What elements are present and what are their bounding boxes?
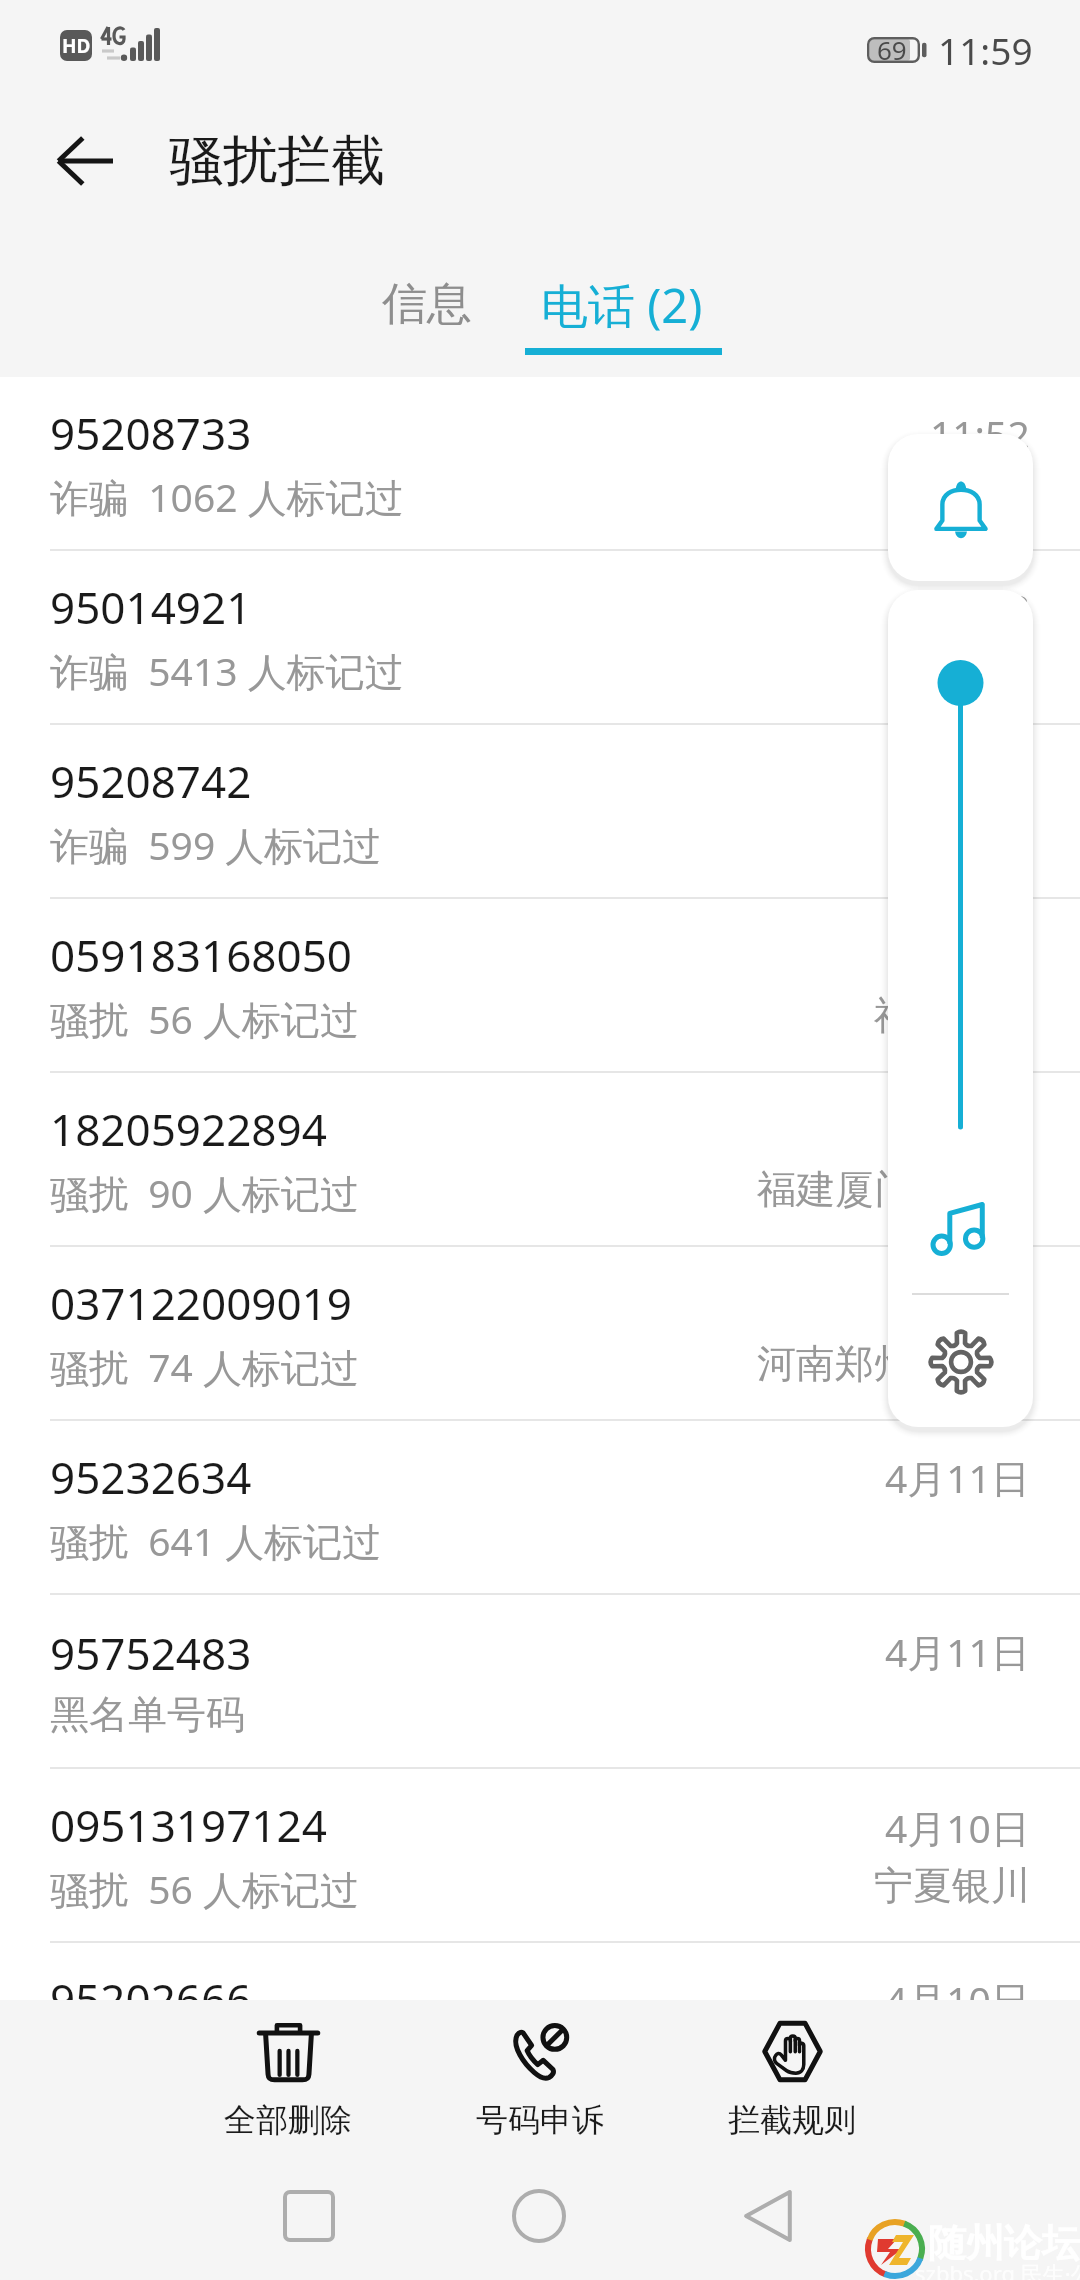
staticText: 11:48 xyxy=(930,581,1030,634)
button[interactable]: 电话 (2) xyxy=(525,260,722,377)
button[interactable]: Back xyxy=(14,100,154,222)
staticText: 037122009019 xyxy=(50,1273,353,1333)
staticText: 11:59 xyxy=(938,25,1033,75)
button[interactable]: 全部删除 xyxy=(162,2000,414,2151)
button[interactable]: 18205922894 xyxy=(0,1073,1080,1247)
button[interactable]: 95202666 xyxy=(0,1943,1080,2117)
button[interactable]: 95208742 xyxy=(0,725,1080,899)
staticText: 诈骗 5413 人标记过 xyxy=(50,644,404,697)
staticText: 95208742 xyxy=(50,751,252,811)
button[interactable]: Ringer mode xyxy=(888,434,1033,581)
staticText: HD xyxy=(62,33,91,59)
staticText: 059183168050 xyxy=(50,925,353,985)
button[interactable]: 95232634 xyxy=(0,1421,1080,1595)
staticText: 18205922894 xyxy=(50,1099,327,1159)
staticText: 号码申诉 xyxy=(476,2100,604,2140)
staticText: 骚扰 38 人标记过 xyxy=(50,2036,360,2089)
staticText: 11:52 xyxy=(930,407,1030,460)
staticText: 河南郑州市联通 xyxy=(757,1339,1030,1388)
staticText: 09513197124 xyxy=(50,1795,327,1855)
staticText: 95202666 xyxy=(50,1969,252,2029)
staticText: 95208733 xyxy=(50,403,252,463)
staticText: 95232634 xyxy=(50,1447,252,1507)
button[interactable]: Sound settings xyxy=(913,1314,1009,1410)
button[interactable]: 信息 xyxy=(328,260,525,377)
button[interactable]: 95752483 xyxy=(0,1595,1080,1769)
staticText: 诈骗 1062 人标记过 xyxy=(50,470,404,523)
button[interactable]: 95014921 xyxy=(0,551,1080,725)
staticText: 宁夏银川 xyxy=(874,1861,1030,1910)
staticText: 骚扰 56 人标记过 xyxy=(50,992,360,1045)
staticText: 信息 xyxy=(382,276,472,333)
staticText: 骚扰 74 人标记过 xyxy=(50,1340,360,1393)
staticText: 骚扰 90 人标记过 xyxy=(50,1166,360,1219)
staticText: 骚扰拦截 xyxy=(169,127,385,195)
staticText: 全部删除 xyxy=(224,2100,352,2140)
staticText: 95014921 xyxy=(50,577,252,637)
staticText: 福建厦门市移动 xyxy=(757,1165,1030,1214)
button[interactable]: 拦截规则 xyxy=(666,2000,918,2151)
staticText: 随州论坛 xyxy=(928,2219,1080,2267)
button[interactable]: Recents xyxy=(194,2151,424,2280)
button[interactable]: 95208733 xyxy=(0,377,1080,551)
staticText: 95752483 xyxy=(50,1623,252,1683)
staticText: 69 xyxy=(877,32,907,67)
staticText: 4月10日 xyxy=(885,1973,1030,2026)
button[interactable]: 037122009019 xyxy=(0,1247,1080,1421)
button[interactable]: Volume slider xyxy=(888,590,1033,1210)
staticText: 4月10日 xyxy=(885,1801,1030,1854)
staticText: 10:52 xyxy=(930,931,1030,984)
staticText: 骚扰 641 人标记过 xyxy=(50,1514,382,1567)
button[interactable]: 号码申诉 xyxy=(414,2000,666,2151)
staticText: 4月11日 xyxy=(885,1625,1030,1678)
staticText: 拦截规则 xyxy=(728,2100,856,2140)
button[interactable]: 059183168050 xyxy=(0,899,1080,1073)
button[interactable]: Media volume xyxy=(913,1180,1009,1276)
staticText: 11:31 xyxy=(930,755,1030,808)
staticText: 9:48 xyxy=(952,1279,1030,1332)
staticText: 骚扰 56 人标记过 xyxy=(50,1862,360,1915)
staticText: 黑名单号码 xyxy=(50,1690,245,1739)
staticText: 福建福州 xyxy=(874,991,1030,1040)
staticText: szbbs.org 民生·公益 xyxy=(915,2258,1080,2280)
staticText: 4月11日 xyxy=(885,1451,1030,1504)
button[interactable]: Back xyxy=(654,2151,884,2280)
button[interactable]: Home xyxy=(424,2151,654,2280)
staticText: 10:27 xyxy=(930,1105,1030,1158)
staticText: 诈骗 599 人标记过 xyxy=(50,818,382,871)
staticText: 电话 (2) xyxy=(541,273,703,337)
button[interactable]: 09513197124 xyxy=(0,1769,1080,1943)
